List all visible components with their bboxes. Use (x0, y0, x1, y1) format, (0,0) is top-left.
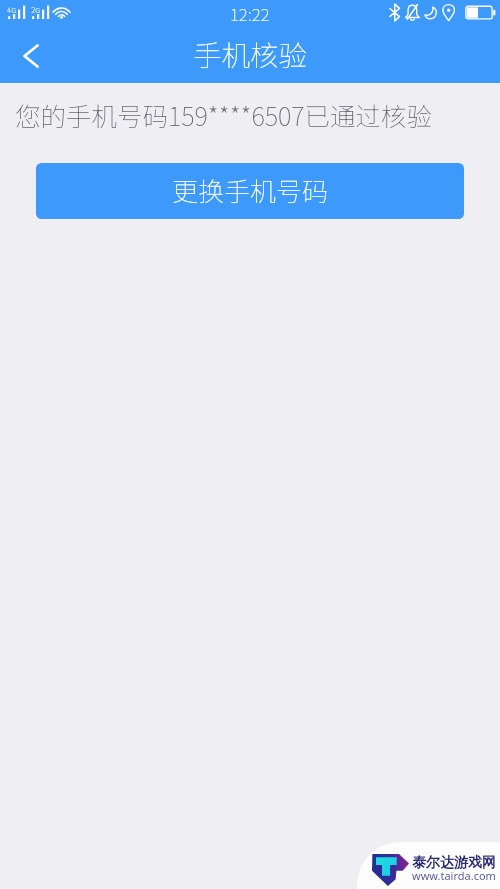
staticText: 4G (7, 4, 17, 16)
staticText: 12:22 (230, 1, 270, 26)
staticText: 更换手机号码 (172, 171, 329, 209)
staticText: 泰尔达游戏网 (412, 854, 496, 872)
staticText: www.tairda.com (412, 868, 496, 883)
button[interactable]: 更换手机号码 (36, 163, 464, 219)
staticText: 手机核验 (193, 33, 308, 74)
staticText: 您的手机号码159****6507已通过核验 (15, 96, 433, 133)
button[interactable]: Back (0, 29, 56, 83)
staticText: 2G (31, 4, 41, 16)
